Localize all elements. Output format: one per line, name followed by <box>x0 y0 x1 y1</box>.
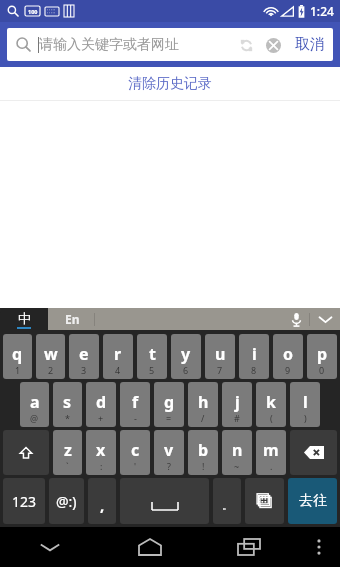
staticText: En <box>65 311 80 327</box>
button[interactable]: , <box>88 478 116 524</box>
button[interactable]: w <box>36 334 65 379</box>
staticText: j <box>235 391 240 413</box>
button[interactable]: Hide keyboard <box>0 527 100 567</box>
staticText: b <box>198 439 209 461</box>
staticText: 123 <box>12 492 37 511</box>
button[interactable]: Backspace <box>290 430 337 475</box>
staticText: m <box>263 439 279 461</box>
button[interactable]: y <box>171 334 201 379</box>
button[interactable]: Voice input <box>283 308 309 330</box>
staticText: p <box>317 343 328 365</box>
button[interactable]: Menu <box>298 527 340 567</box>
button[interactable]: h <box>188 382 218 427</box>
staticText: z <box>64 439 72 461</box>
button[interactable]: Clear <box>259 31 287 59</box>
staticText: 100 <box>28 8 38 15</box>
staticText: 9 <box>285 364 291 376</box>
staticText: n <box>232 439 243 461</box>
button[interactable]: v <box>154 430 184 475</box>
button[interactable]: e <box>69 334 99 379</box>
staticText: 中 <box>18 310 31 326</box>
button[interactable]: Shift <box>3 430 49 475</box>
button[interactable]: 取消 <box>287 28 333 61</box>
staticText: w <box>44 343 58 365</box>
button[interactable]: @:) <box>49 478 84 524</box>
staticText: f <box>132 391 139 413</box>
button[interactable]: q <box>3 334 32 379</box>
staticText: 5 <box>149 364 155 376</box>
staticText: = <box>166 412 172 424</box>
staticText: . <box>270 460 273 472</box>
staticText: 2 <box>48 364 54 376</box>
staticText: / <box>201 412 205 424</box>
button[interactable]: Refresh <box>233 32 259 58</box>
button[interactable]: c <box>120 430 150 475</box>
staticText: 取消 <box>295 35 325 54</box>
staticText: q <box>12 343 23 365</box>
button[interactable]: 清除历史记录 <box>0 67 340 100</box>
button[interactable]: a <box>20 382 49 427</box>
staticText: ( <box>270 412 273 424</box>
staticText: ~ <box>234 460 240 472</box>
staticText: v <box>164 439 174 461</box>
staticText: x <box>96 439 106 461</box>
staticText: @:) <box>56 492 77 511</box>
staticText: # <box>234 412 240 424</box>
staticText: 4 <box>115 364 121 376</box>
staticText: 请输入关键字或者网址 <box>39 36 233 54</box>
staticText: 。 <box>222 498 233 512</box>
staticText: 0 <box>319 364 325 376</box>
staticText: , <box>100 495 105 515</box>
button[interactable]: u <box>205 334 235 379</box>
button[interactable]: l <box>290 382 320 427</box>
staticText: 6 <box>183 364 189 376</box>
staticText: i <box>252 343 257 365</box>
staticText: k <box>266 391 276 413</box>
button[interactable]: t <box>137 334 167 379</box>
staticText: ` <box>66 460 69 472</box>
staticText: - <box>134 412 137 424</box>
button[interactable]: j <box>222 382 252 427</box>
button[interactable]: f <box>120 382 150 427</box>
button[interactable]: En <box>65 311 80 327</box>
button[interactable]: i <box>239 334 269 379</box>
button[interactable]: 。 <box>213 478 241 524</box>
button[interactable]: p <box>307 334 337 379</box>
button[interactable]: b <box>188 430 218 475</box>
button[interactable]: 123 <box>3 478 45 524</box>
button[interactable]: d <box>86 382 116 427</box>
button[interactable]: Recent apps <box>199 527 298 567</box>
staticText: * <box>65 412 70 424</box>
staticText: t <box>149 343 156 365</box>
button[interactable]: 去往 <box>288 478 337 524</box>
button[interactable]: Space <box>120 478 209 524</box>
button[interactable]: r <box>103 334 133 379</box>
staticText: 1 <box>15 364 21 376</box>
button[interactable]: x <box>86 430 116 475</box>
staticText: ? <box>167 460 171 472</box>
button[interactable]: g <box>154 382 184 427</box>
staticText: u <box>215 343 226 365</box>
button[interactable]: 中 <box>0 308 48 330</box>
button[interactable]: Home <box>100 527 199 567</box>
button[interactable]: Switch keyboard <box>245 478 284 524</box>
staticText: g <box>164 391 175 413</box>
staticText: + <box>98 412 104 424</box>
staticText: d <box>96 391 107 413</box>
staticText: 3 <box>81 364 87 376</box>
button[interactable]: m <box>256 430 286 475</box>
button[interactable]: Hide keyboard <box>310 308 340 330</box>
staticText: a <box>30 391 40 413</box>
staticText: 去往 <box>299 492 327 510</box>
button[interactable]: n <box>222 430 252 475</box>
button[interactable]: z <box>53 430 82 475</box>
button[interactable]: o <box>273 334 303 379</box>
staticText: 8 <box>251 364 257 376</box>
button[interactable]: k <box>256 382 286 427</box>
staticText: 清除历史记录 <box>128 75 212 93</box>
staticText: ' <box>134 460 137 472</box>
button[interactable]: s <box>53 382 82 427</box>
staticText: 1:24 <box>310 3 334 19</box>
staticText: e <box>79 343 89 365</box>
staticText: s <box>63 391 72 413</box>
